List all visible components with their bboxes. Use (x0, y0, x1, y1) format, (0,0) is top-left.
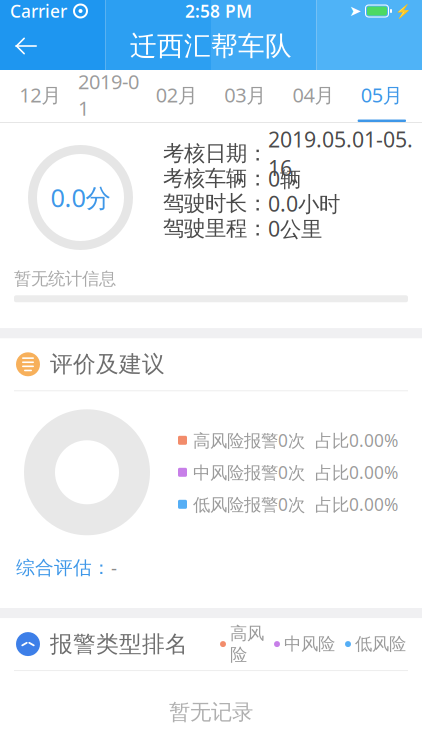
staticText: 迁西汇帮车队 (130, 30, 292, 62)
staticText: 考核日期： (163, 140, 268, 167)
staticText: 2019-01 (78, 68, 139, 121)
staticText: 暂无统计信息 (14, 268, 116, 289)
staticText: 05月 (361, 81, 403, 108)
button[interactable]: 12月 (6, 70, 74, 122)
staticText: 03月 (224, 81, 266, 108)
staticText: 04月 (292, 81, 334, 108)
staticText: 中风险 (284, 633, 335, 655)
staticText: 02月 (156, 81, 198, 108)
staticText: ➤ (349, 3, 361, 19)
staticText: - (111, 555, 117, 580)
staticText: 低风险报警0次 占比0.00% (193, 493, 398, 516)
staticText: ⚡ (395, 3, 412, 19)
staticText: 报警类型排名 (50, 630, 188, 658)
staticText: 低风险 (355, 633, 406, 655)
staticText: 评价及建议 (50, 350, 165, 378)
staticText: 驾驶里程： (163, 215, 268, 242)
staticText: 高风险报警0次 占比0.00% (193, 429, 398, 452)
button[interactable]: 05月 (348, 70, 416, 122)
staticText: 中风险报警0次 占比0.00% (193, 461, 398, 484)
staticText: 0.0小时 (268, 189, 340, 218)
staticText (67, 0, 73, 26)
staticText: 考核车辆： (163, 165, 268, 192)
button[interactable]: 2019-01 (74, 70, 143, 122)
staticText: 综合评估： (16, 556, 111, 579)
button[interactable]: 返回 (0, 24, 52, 68)
staticText: 0辆 (268, 164, 301, 193)
button[interactable]: 02月 (143, 70, 211, 122)
staticText: Carrier (10, 0, 67, 22)
button[interactable]: 03月 (211, 70, 279, 122)
staticText: 2:58 PM (185, 0, 252, 22)
staticText: 12月 (19, 81, 61, 108)
staticText: 驾驶时长： (163, 190, 268, 217)
staticText: 暂无记录 (169, 699, 253, 725)
staticText: 0.0分 (50, 181, 110, 214)
button[interactable]: 04月 (279, 70, 348, 122)
staticText: 高风险 (230, 623, 264, 665)
staticText: 0公里 (268, 214, 322, 243)
staticText: 2019.05.01-05.16 (268, 125, 413, 182)
